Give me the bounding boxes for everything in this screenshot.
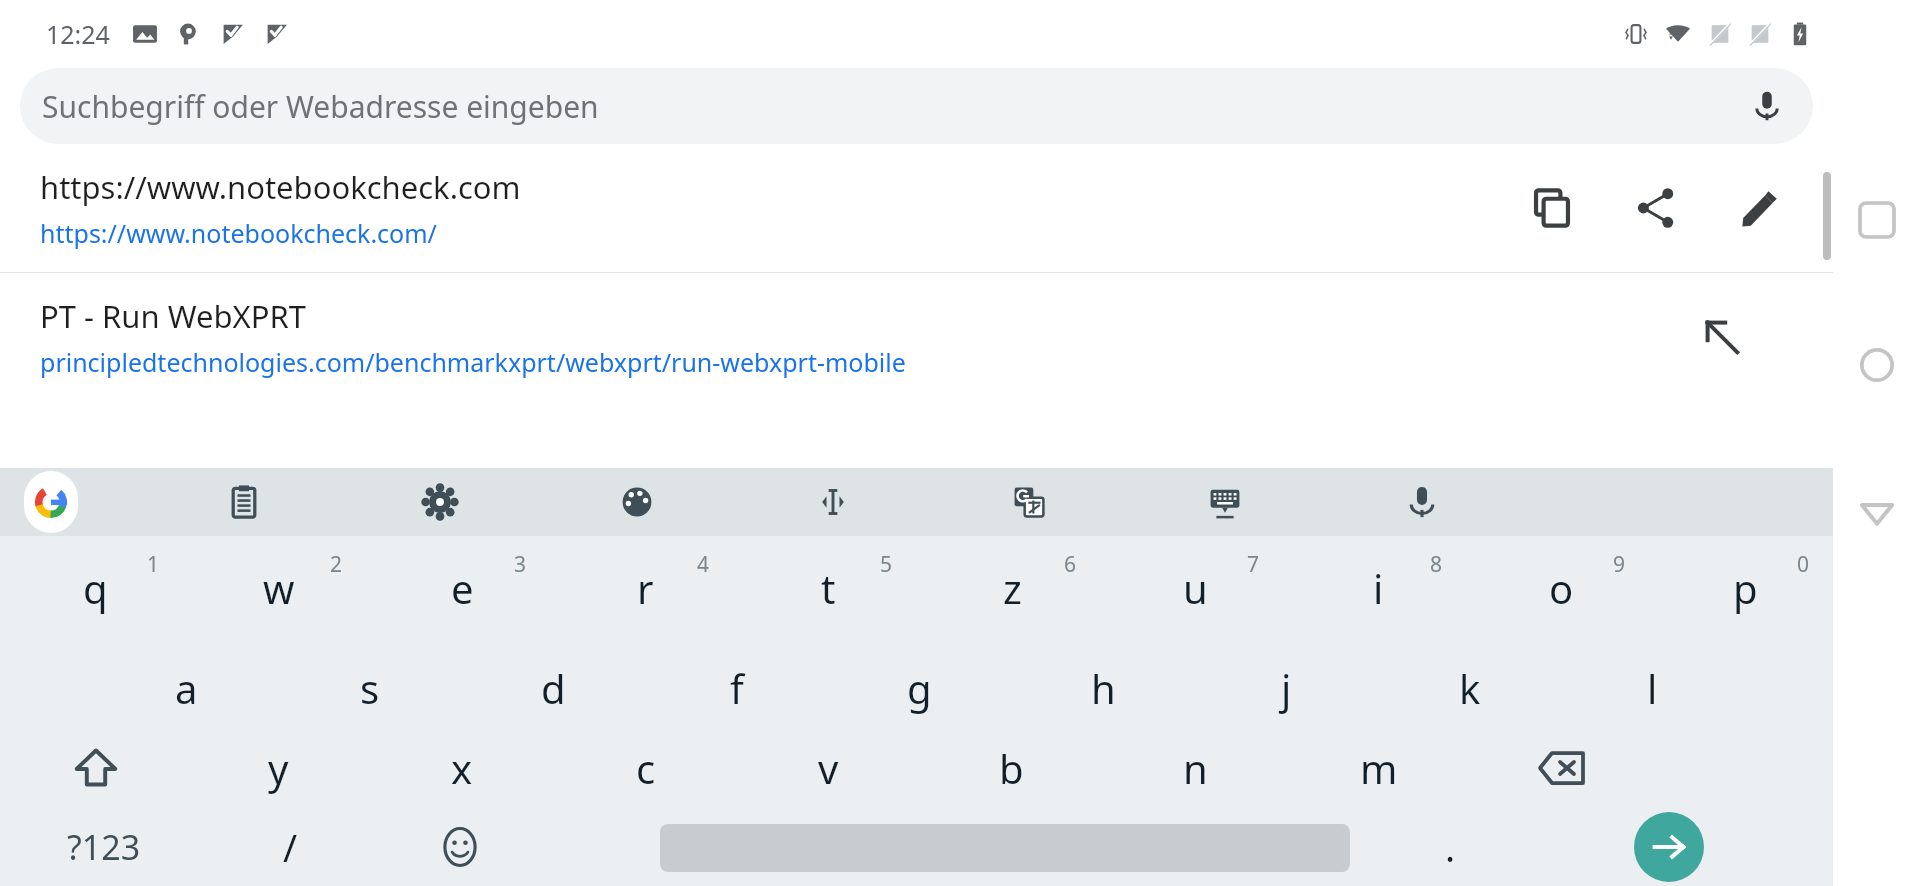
staticText: https://www.notebookcheck.com/	[40, 216, 437, 250]
button[interactable]: Recents	[1837, 180, 1917, 260]
button[interactable]: Google	[24, 471, 78, 533]
staticText: f	[730, 661, 744, 715]
button[interactable]: Use this suggestion	[1685, 300, 1759, 374]
button[interactable]: Settings	[406, 468, 474, 536]
button[interactable]: h	[1012, 648, 1195, 728]
button[interactable]: PT - Run WebXPRT	[0, 273, 1833, 401]
button[interactable]: Suchbegriff oder Webadresse eingeben	[20, 68, 1813, 144]
staticText: 3	[514, 550, 527, 579]
button[interactable]: f	[645, 648, 828, 728]
button[interactable]: Back	[1837, 473, 1917, 553]
staticText: r	[637, 561, 654, 615]
button[interactable]: l	[1561, 648, 1744, 728]
staticText: i	[1373, 561, 1384, 615]
button[interactable]: Share	[1619, 171, 1693, 245]
button[interactable]: v	[737, 728, 920, 808]
button[interactable]: Themes	[603, 468, 671, 536]
staticText: z	[1003, 561, 1022, 615]
staticText: 8	[1430, 550, 1443, 579]
staticText: 4	[697, 550, 710, 579]
staticText: d	[541, 661, 566, 715]
staticText: n	[1183, 741, 1208, 795]
button[interactable]: Translate	[995, 468, 1063, 536]
staticText: x	[451, 741, 473, 795]
staticText: w	[263, 561, 295, 615]
button[interactable]: Emoji	[380, 808, 540, 886]
button[interactable]: u	[1104, 536, 1287, 648]
staticText: m	[1360, 741, 1398, 795]
button[interactable]: k	[1378, 648, 1561, 728]
staticText: k	[1459, 661, 1481, 715]
button[interactable]: https://www.notebookcheck.com	[0, 144, 1833, 272]
button[interactable]: r	[554, 536, 737, 648]
button[interactable]: b	[920, 728, 1103, 808]
button[interactable]: g	[828, 648, 1011, 728]
staticText: 5	[880, 550, 893, 579]
staticText: b	[999, 741, 1024, 795]
button[interactable]: s	[278, 648, 461, 728]
button[interactable]: Text editing	[799, 468, 867, 536]
staticText: a	[175, 661, 198, 715]
button[interactable]: Backspace	[1470, 728, 1653, 808]
staticText: 6	[1064, 550, 1077, 579]
button[interactable]: y	[187, 728, 370, 808]
staticText: j	[1281, 661, 1292, 715]
button[interactable]: c	[554, 728, 737, 808]
button[interactable]: o	[1470, 536, 1653, 648]
staticText: p	[1733, 561, 1758, 615]
button[interactable]: w	[187, 536, 370, 648]
staticText: .	[1445, 821, 1456, 873]
button[interactable]: Shift	[4, 728, 187, 808]
button[interactable]: p	[1654, 536, 1837, 648]
staticText: 0	[1797, 550, 1810, 579]
button[interactable]: Clipboard	[210, 468, 278, 536]
staticText: 7	[1247, 550, 1260, 579]
staticText: y	[268, 741, 289, 795]
button[interactable]: a	[95, 648, 278, 728]
button[interactable]: i	[1287, 536, 1470, 648]
button[interactable]: /	[210, 808, 370, 886]
staticText: principledtechnologies.com/benchmarkxprt…	[40, 345, 906, 379]
staticText: https://www.notebookcheck.com	[40, 166, 521, 208]
staticText: t	[821, 561, 836, 615]
staticText: v	[818, 741, 839, 795]
button[interactable]: Home	[1837, 325, 1917, 405]
button[interactable]: ?123	[4, 808, 204, 886]
button[interactable]: d	[462, 648, 645, 728]
staticText: q	[83, 561, 108, 615]
button[interactable]: n	[1104, 728, 1287, 808]
button[interactable]: .	[1370, 808, 1530, 886]
staticText: l	[1647, 661, 1658, 715]
button[interactable]: Copy	[1515, 171, 1589, 245]
button[interactable]: q	[4, 536, 187, 648]
staticText: 9	[1613, 550, 1626, 579]
button[interactable]: Voice input	[1388, 468, 1456, 536]
staticText: 1	[147, 550, 160, 579]
button[interactable]: t	[737, 536, 920, 648]
button[interactable]: z	[921, 536, 1104, 648]
staticText: ?123	[67, 824, 141, 870]
button[interactable]: x	[370, 728, 553, 808]
staticText: u	[1183, 561, 1208, 615]
staticText: 12:24	[46, 17, 110, 51]
staticText: h	[1091, 661, 1116, 715]
staticText: o	[1549, 561, 1574, 615]
button[interactable]: m	[1287, 728, 1470, 808]
staticText: s	[360, 661, 380, 715]
button[interactable]: Voice search	[1743, 82, 1791, 130]
button[interactable]: Edit	[1723, 171, 1797, 245]
staticText: Suchbegriff oder Webadresse eingeben	[42, 86, 599, 127]
button[interactable]: Go	[1634, 812, 1704, 882]
staticText: PT - Run WebXPRT	[40, 295, 306, 337]
button[interactable]: e	[371, 536, 554, 648]
staticText: e	[451, 561, 474, 615]
staticText: 2	[330, 550, 343, 579]
button[interactable]: j	[1195, 648, 1378, 728]
staticText: g	[907, 661, 932, 715]
staticText: c	[636, 741, 656, 795]
button[interactable]: Keyboard modes	[1191, 468, 1259, 536]
staticText: /	[283, 821, 298, 873]
